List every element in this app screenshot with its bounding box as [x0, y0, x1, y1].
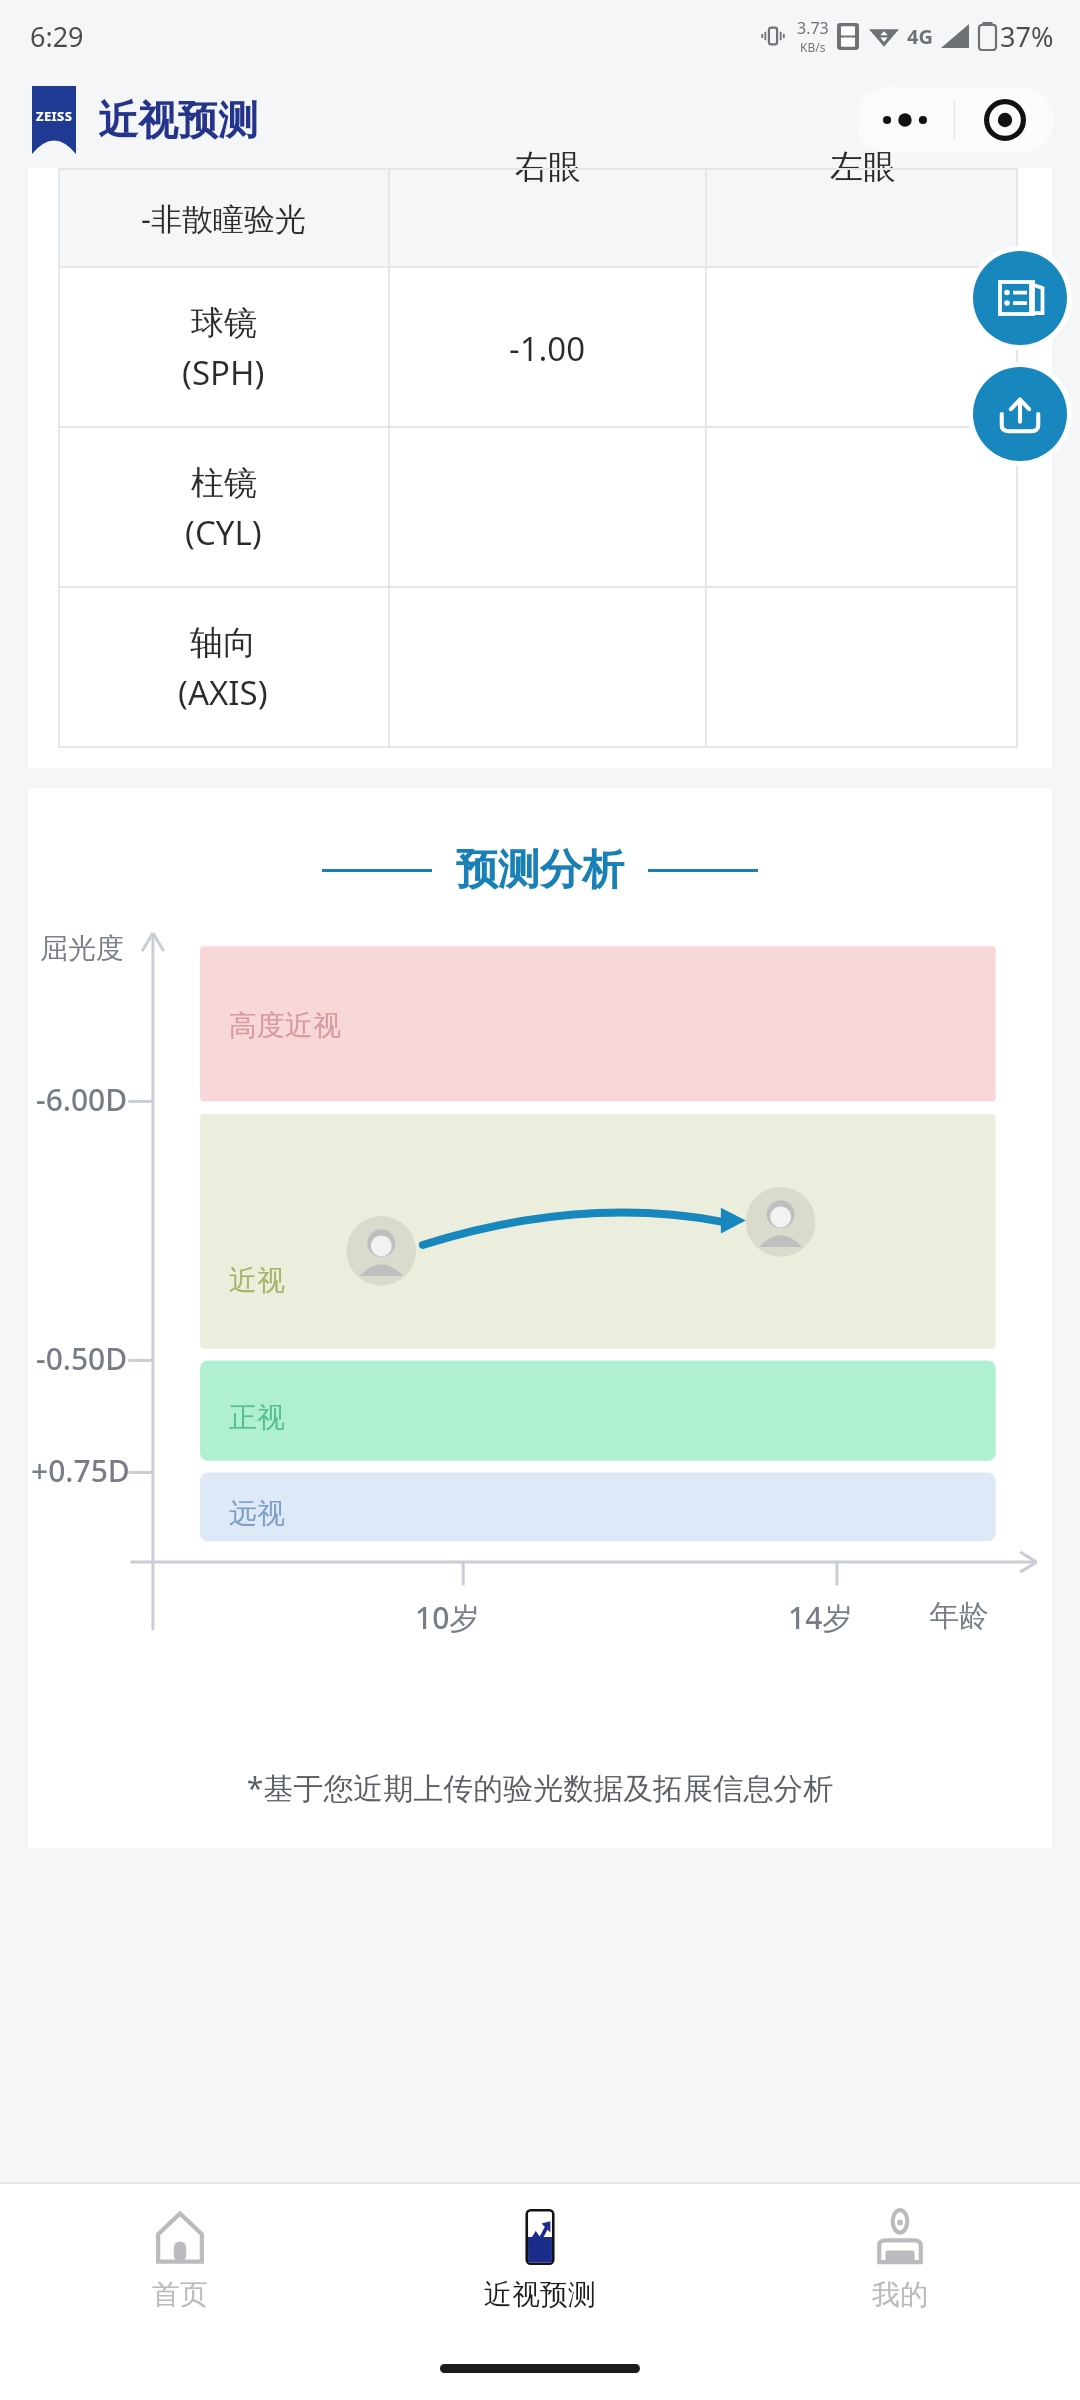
- staticText: -0.50D: [36, 1338, 128, 1379]
- staticText: 37%: [1000, 18, 1054, 55]
- button[interactable]: Report list: [973, 251, 1067, 345]
- button[interactable]: Upload: [973, 367, 1067, 461]
- staticText: 近视预测: [484, 2277, 596, 2312]
- staticText: 近视: [229, 1263, 285, 1298]
- staticText: (SPH): [182, 350, 265, 395]
- staticText: 4G: [907, 23, 933, 50]
- staticText: KB/s: [800, 39, 826, 55]
- button[interactable]: 近视预测: [360, 2184, 720, 2336]
- staticText: (AXIS): [178, 670, 268, 715]
- button[interactable]: More and Close: [856, 87, 1054, 153]
- staticText: 3.73: [797, 17, 829, 39]
- staticText: -6.00D: [36, 1079, 128, 1120]
- staticText: 球镜: [191, 302, 257, 344]
- staticText: +0.75D: [31, 1450, 130, 1491]
- staticText: ZEISS: [36, 107, 73, 125]
- staticText: 预测分析: [456, 844, 624, 897]
- staticText: 我的: [872, 2277, 928, 2312]
- staticText: 柱镜: [191, 462, 257, 504]
- staticText: -非散瞳验光: [141, 197, 306, 239]
- staticText: 6:29: [30, 18, 84, 55]
- staticText: 轴向: [190, 622, 256, 664]
- staticText: 左眼: [830, 146, 896, 188]
- staticText: 首页: [152, 2277, 208, 2312]
- staticText: 14岁: [788, 1597, 853, 1638]
- button[interactable]: 首页: [0, 2184, 360, 2336]
- staticText: 10岁: [415, 1597, 480, 1638]
- staticText: -1.00: [509, 326, 586, 371]
- button[interactable]: 我的: [720, 2184, 1080, 2336]
- staticText: 右眼: [515, 146, 581, 188]
- staticText: 远视: [229, 1496, 285, 1531]
- staticText: 正视: [229, 1400, 285, 1435]
- staticText: *基于您近期上传的验光数据及拓展信息分析: [28, 1767, 1052, 1808]
- staticText: 年龄: [929, 1597, 989, 1635]
- staticText: 高度近视: [229, 1008, 341, 1043]
- staticText: (CYL): [185, 510, 262, 555]
- staticText: 近视预测: [98, 95, 258, 145]
- staticText: 屈光度: [40, 931, 124, 966]
